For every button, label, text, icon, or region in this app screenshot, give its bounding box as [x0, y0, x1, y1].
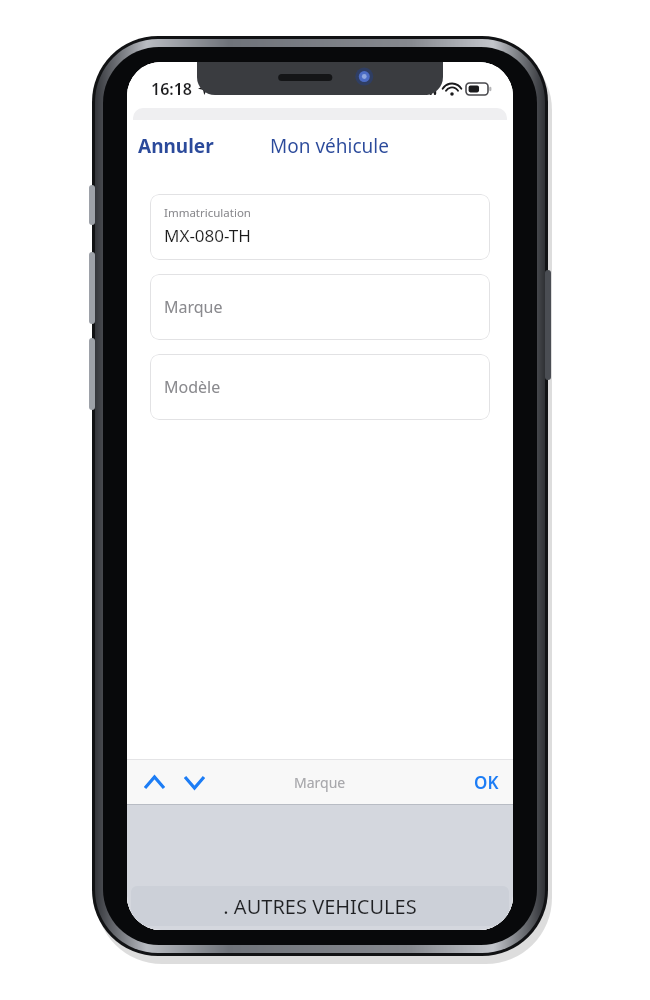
button[interactable]: OK	[460, 763, 513, 802]
button[interactable]: Immatriculation	[150, 194, 490, 260]
staticText: Mon véhicule	[270, 133, 389, 159]
button[interactable]: Annuler	[127, 127, 224, 165]
button[interactable]: . AUTRES VEHICULES	[131, 886, 509, 926]
staticText: Marque	[164, 296, 223, 318]
button[interactable]: Champ précédent	[137, 765, 171, 799]
staticText: OK	[474, 771, 499, 794]
staticText: 16:18	[151, 78, 193, 100]
button[interactable]: Marque	[150, 274, 490, 340]
staticText: Annuler	[138, 133, 214, 159]
staticText: Modèle	[164, 376, 221, 398]
staticText: MX-080-TH	[164, 224, 251, 247]
staticText: . AUTRES VEHICULES	[223, 893, 417, 920]
button[interactable]: Modèle	[150, 354, 490, 420]
staticText: Marque	[294, 773, 346, 792]
button[interactable]: Champ suivant	[177, 765, 211, 799]
staticText: Immatriculation	[164, 205, 251, 221]
